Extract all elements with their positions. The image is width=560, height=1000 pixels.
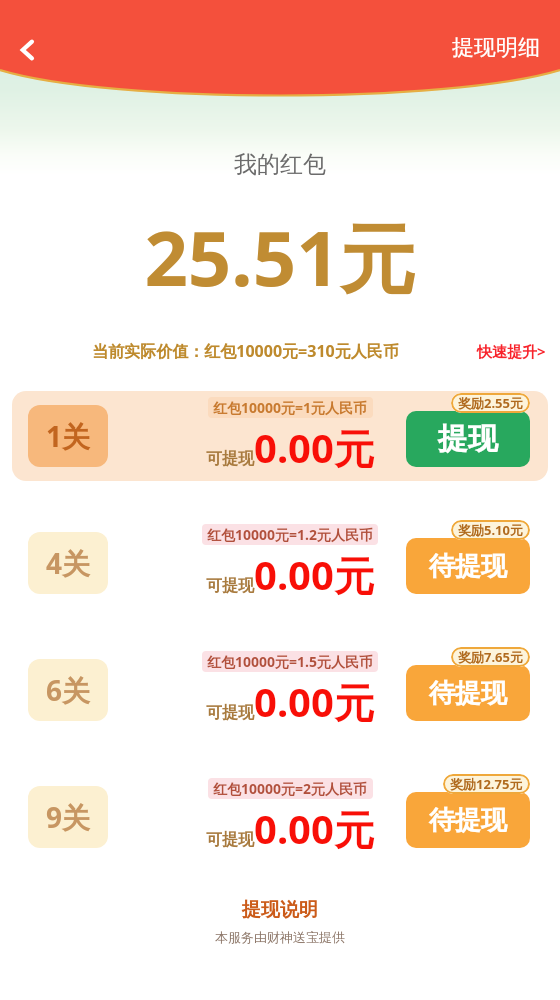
- staticText: 奖励2.55元: [458, 394, 523, 412]
- staticText: 我的红包: [0, 150, 560, 179]
- button[interactable]: 4关: [12, 518, 548, 608]
- staticText: 可提现: [206, 830, 254, 850]
- button[interactable]: 返回: [8, 30, 48, 70]
- staticText: 0.00元: [254, 674, 374, 729]
- button[interactable]: 1关: [12, 391, 548, 481]
- staticText: 提现明细: [452, 34, 540, 62]
- staticText: 6关: [46, 671, 91, 709]
- staticText: 提现: [438, 420, 498, 458]
- button[interactable]: 待提现: [406, 538, 530, 594]
- staticText: 25.51元: [0, 205, 560, 309]
- staticText: 红包10000元=1.5元人民币: [207, 652, 373, 671]
- staticText: 0.00元: [254, 420, 374, 475]
- staticText: 奖励5.10元: [458, 521, 523, 539]
- staticText: 红包10000元=1.2元人民币: [207, 525, 373, 544]
- staticText: 9关: [46, 798, 91, 836]
- staticText: 0.00元: [254, 801, 374, 856]
- staticText: 待提现: [429, 677, 507, 710]
- staticText: 待提现: [429, 804, 507, 837]
- staticText: 4关: [46, 544, 91, 582]
- staticText: 待提现: [429, 550, 507, 583]
- button[interactable]: 待提现: [406, 665, 530, 721]
- staticText: 红包10000元=1元人民币: [213, 398, 368, 417]
- staticText: 可提现: [206, 449, 254, 469]
- staticText: 本服务由财神送宝提供: [215, 929, 345, 945]
- button[interactable]: 提现: [406, 411, 530, 467]
- staticText: 1关: [46, 417, 91, 455]
- button[interactable]: 9关: [12, 772, 548, 862]
- button[interactable]: 提现说明: [0, 898, 560, 945]
- staticText: 快速提升>: [477, 341, 546, 361]
- staticText: 奖励7.65元: [458, 648, 523, 666]
- button[interactable]: 6关: [12, 645, 548, 735]
- staticText: 当前实际价值：红包10000元=310元人民币: [16, 340, 475, 362]
- staticText: 红包10000元=2元人民币: [213, 779, 368, 798]
- staticText: 奖励12.75元: [450, 775, 523, 793]
- button[interactable]: 快速提升>: [475, 335, 548, 367]
- staticText: 0.00元: [254, 547, 374, 602]
- button[interactable]: 待提现: [406, 792, 530, 848]
- staticText: 可提现: [206, 576, 254, 596]
- staticText: 提现说明: [242, 898, 318, 922]
- staticText: 可提现: [206, 703, 254, 723]
